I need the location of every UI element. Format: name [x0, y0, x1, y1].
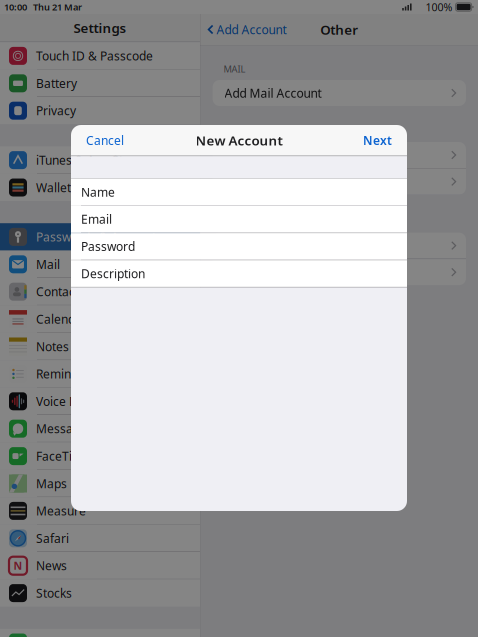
staticText: FaceTime: [36, 448, 90, 464]
staticText: Voice Memos: [36, 393, 111, 409]
button[interactable]: FaceTime: [0, 442, 200, 470]
staticText: Battery: [36, 75, 77, 91]
staticText: Password: [81, 238, 135, 254]
staticText: Add Account: [217, 21, 287, 37]
button[interactable]: Voice Memos: [0, 388, 200, 415]
staticText: Contacts: [36, 284, 85, 300]
staticText: Calendar: [36, 311, 87, 327]
button[interactable]: Battery: [0, 70, 200, 97]
staticText: News: [36, 558, 67, 574]
staticText: 100%: [426, 0, 453, 14]
button[interactable]: Maps: [0, 470, 200, 497]
staticText: Measure: [36, 503, 86, 519]
staticText: iTunes & App Store: [36, 152, 142, 168]
button[interactable]: Add Account: [208, 17, 287, 41]
staticText: Cancel: [86, 132, 124, 148]
staticText: 10:00: [4, 1, 27, 13]
button[interactable]: [213, 142, 466, 168]
staticText: Add Mail Account: [225, 85, 322, 101]
button[interactable]: Privacy: [0, 97, 200, 124]
button[interactable]: Mail: [0, 251, 200, 278]
button[interactable]: Touch ID & Passcode: [0, 42, 200, 70]
staticText: Email: [81, 211, 112, 227]
staticText: New Account: [195, 131, 282, 149]
staticText: Description: [81, 266, 145, 281]
button[interactable]: Reminders: [0, 360, 200, 388]
button[interactable]: Contacts: [0, 278, 200, 305]
staticText: Maps: [36, 475, 67, 491]
button[interactable]: Password: [71, 233, 407, 260]
button[interactable]: [213, 169, 466, 195]
button[interactable]: Notes: [0, 333, 200, 360]
staticText: Other: [320, 21, 358, 38]
button[interactable]: Messages: [0, 415, 200, 442]
staticText: Mail: [36, 256, 60, 272]
staticText: Stocks: [36, 585, 72, 601]
staticText: Reminders: [36, 366, 96, 382]
staticText: Safari: [36, 530, 69, 546]
button[interactable]: Email: [71, 206, 407, 232]
staticText: N: [13, 559, 22, 573]
button[interactable]: Measure: [0, 497, 200, 525]
staticText: Privacy: [36, 103, 76, 119]
button[interactable]: Cancel: [84, 127, 126, 153]
button[interactable]: Game Center: [0, 629, 200, 637]
button[interactable]: N: [0, 552, 200, 579]
staticText: Touch ID & Passcode: [36, 48, 153, 64]
staticText: Messages: [36, 421, 93, 437]
button[interactable]: Name: [71, 179, 407, 205]
button[interactable]: Stocks: [0, 579, 200, 607]
staticText: MAIL: [224, 63, 246, 75]
button[interactable]: Next: [361, 127, 394, 153]
staticText: Notes: [36, 338, 69, 354]
staticText: Settings: [73, 19, 126, 37]
button[interactable]: [213, 233, 466, 259]
button[interactable]: Settings: [0, 14, 200, 42]
button[interactable]: Passwords & Accounts: [0, 223, 200, 251]
button[interactable]: Calendar: [0, 305, 200, 333]
staticText: Name: [81, 184, 115, 200]
button[interactable]: Wallet & Apple Pay: [0, 174, 200, 201]
staticText: Next: [363, 132, 392, 148]
button[interactable]: [213, 259, 466, 285]
staticText: Wallet & Apple Pay: [36, 179, 141, 195]
button[interactable]: iTunes & App Store: [0, 146, 200, 174]
staticText: Thu 21 Mar: [33, 1, 82, 13]
staticText: Passwords & Accounts: [36, 229, 162, 245]
button[interactable]: Add Mail Account: [213, 80, 466, 106]
button[interactable]: Description: [71, 260, 407, 287]
button[interactable]: Safari: [0, 525, 200, 552]
